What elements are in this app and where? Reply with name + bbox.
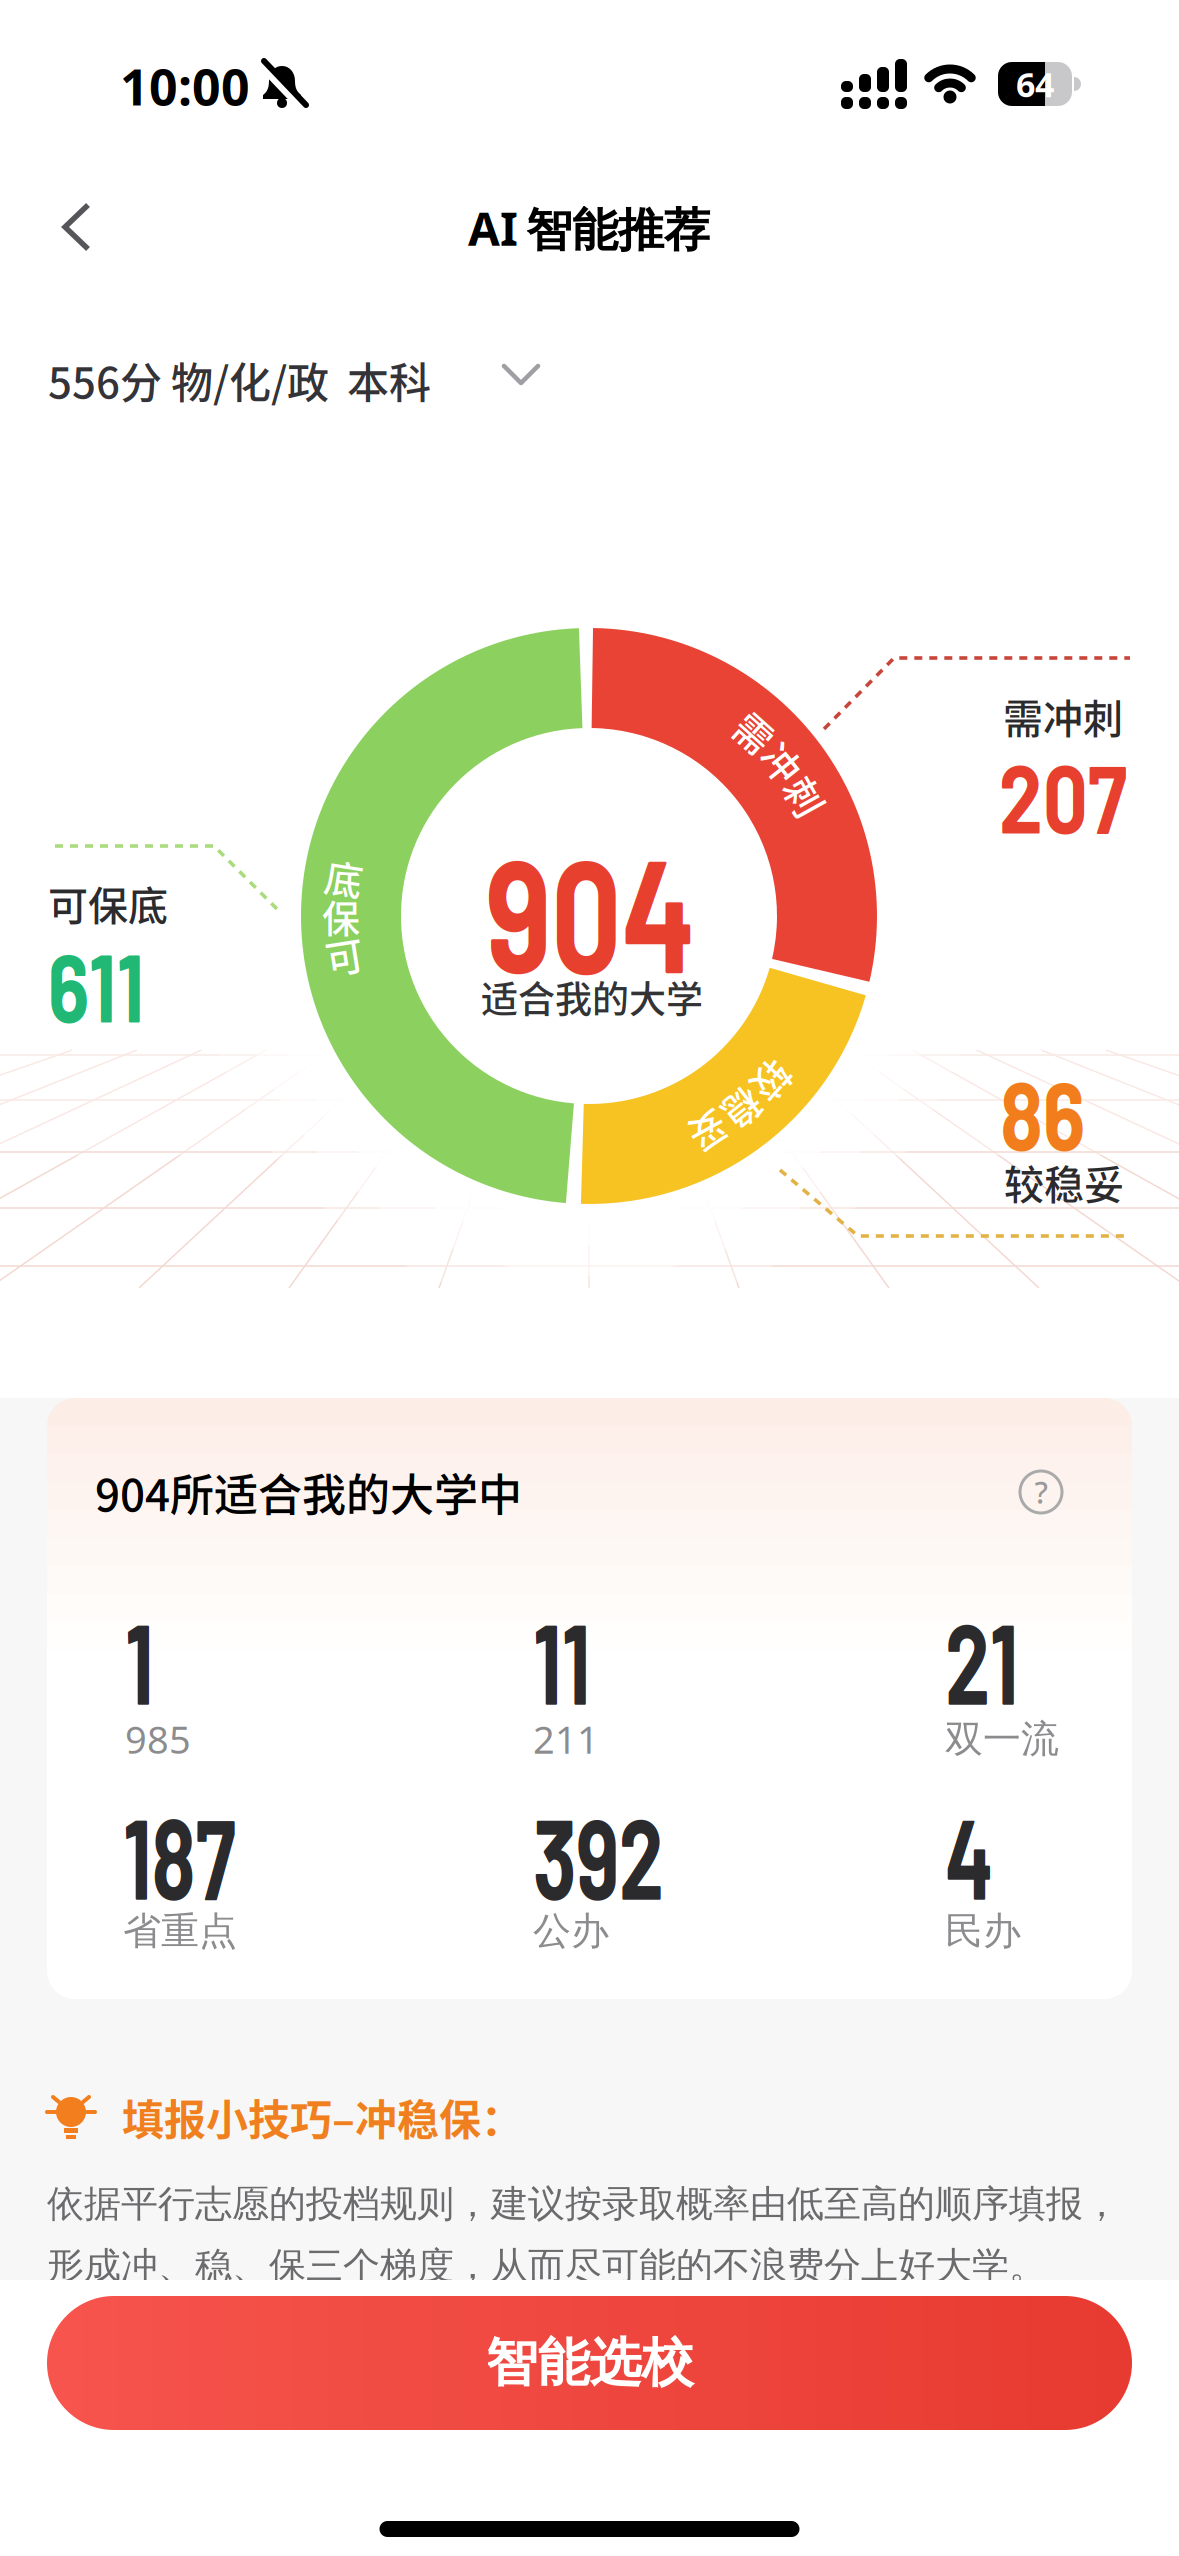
staticText: ?: [1034, 1472, 1047, 1512]
staticText: 需: [736, 704, 774, 759]
staticText: 904: [456, 815, 726, 1005]
staticText: 妥: [690, 1105, 728, 1160]
staticText: 较: [754, 1054, 792, 1109]
staticText: 适合我的大学: [481, 970, 703, 1024]
staticText: 可: [325, 927, 363, 982]
staticText: 冲: [764, 734, 802, 789]
staticText: AI 智能推荐: [468, 197, 710, 259]
staticText: 86: [991, 1054, 1095, 1170]
staticText: 省重点: [123, 1908, 237, 1954]
staticText: 392: [533, 1788, 715, 1922]
staticText: 需冲刺: [1003, 687, 1123, 745]
staticText: 双一流: [945, 1716, 1059, 1762]
button[interactable]: 556分 物/化/政 本科: [48, 340, 588, 420]
staticText: 可保底: [48, 874, 168, 932]
staticText: 依据平行志愿的投档规则，建议按录取概率由低至高的顺序填报，: [47, 2181, 1120, 2227]
button[interactable]: 智能选校: [47, 2296, 1132, 2430]
staticText: 较稳妥: [1004, 1153, 1124, 1211]
staticText: 556分 物/化/政 本科: [48, 350, 431, 410]
staticText: 形成冲、稳、保三个梯度，从而尽可能的不浪费分上好大学。: [47, 2243, 1046, 2289]
staticText: 10:00: [120, 53, 250, 119]
button[interactable]: Back: [50, 198, 110, 258]
staticText: 1: [125, 1593, 165, 1727]
staticText: 4: [945, 1788, 1013, 1922]
staticText: 211: [533, 1714, 599, 1764]
staticText: 187: [123, 1788, 280, 1922]
staticText: 985: [125, 1714, 191, 1764]
staticText: 稳: [724, 1083, 762, 1138]
staticText: 保: [322, 888, 360, 943]
staticText: 民办: [945, 1908, 1021, 1954]
staticText: 公办: [533, 1908, 609, 1954]
staticText: 207: [984, 737, 1141, 853]
staticText: 611: [48, 926, 168, 1042]
staticText: 刺: [787, 768, 825, 823]
staticText: 64: [1016, 61, 1054, 107]
staticText: 11: [533, 1593, 613, 1727]
staticText: 21: [945, 1593, 1047, 1727]
staticText: 智能选校: [485, 2331, 693, 2395]
staticText: 填报小技巧–冲稳保：: [122, 2087, 523, 2147]
staticText: 底: [325, 850, 363, 905]
button[interactable]: 帮助: [1017, 1468, 1065, 1516]
staticText: 904所适合我的大学中: [95, 1460, 522, 1524]
